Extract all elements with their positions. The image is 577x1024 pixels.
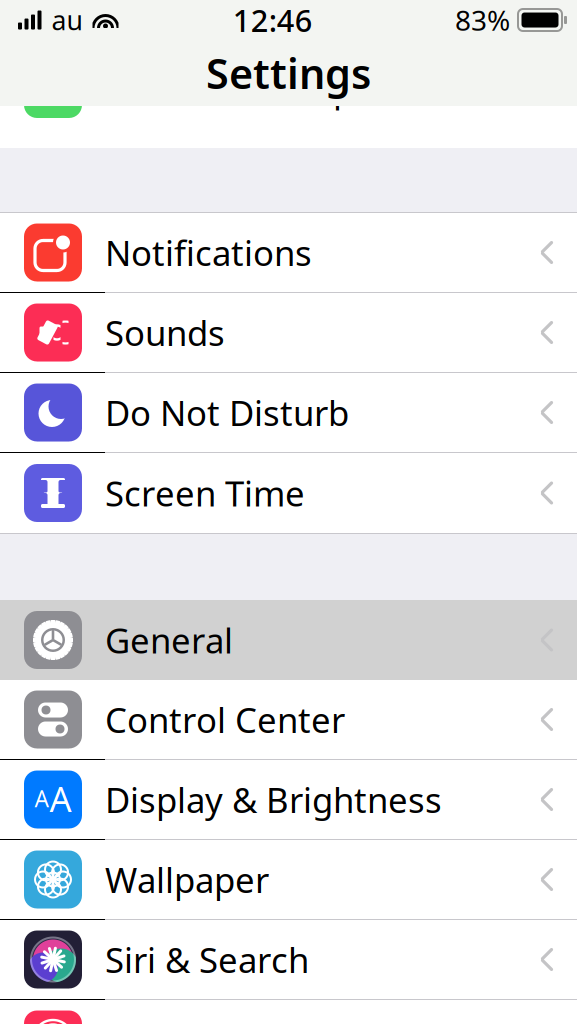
- staticText: General: [105, 617, 233, 663]
- staticText: On: [477, 66, 525, 112]
- button[interactable]: Notifications: [0, 213, 577, 293]
- button[interactable]: Screen Time: [0, 453, 577, 533]
- staticText: Personal Hotspot: [105, 66, 388, 112]
- staticText: Display & Brightness: [105, 776, 442, 822]
- staticText: 83%: [455, 1, 510, 39]
- staticText: A: [49, 775, 71, 821]
- staticText: Notifications: [105, 229, 312, 275]
- staticText: Siri & Search: [105, 936, 309, 982]
- staticText: A: [34, 783, 48, 813]
- button[interactable]: Do Not Disturb: [0, 373, 577, 453]
- staticText: Screen Time: [105, 470, 305, 516]
- staticText: 12:46: [233, 0, 313, 40]
- button[interactable]: General: [0, 600, 577, 680]
- staticText: au: [51, 2, 82, 38]
- staticText: Wallpaper: [105, 856, 269, 902]
- staticText: Sounds: [105, 309, 225, 355]
- staticText: Settings: [206, 46, 371, 100]
- staticText: Do Not Disturb: [105, 389, 349, 435]
- button[interactable]: Siri & Search: [0, 920, 577, 1000]
- button[interactable]: A: [0, 760, 577, 840]
- button[interactable]: Touch ID & Passcode: [0, 1000, 577, 1024]
- staticText: Control Center: [105, 696, 345, 742]
- button[interactable]: Control Center: [0, 680, 577, 760]
- button[interactable]: Wallpaper: [0, 840, 577, 920]
- button[interactable]: Sounds: [0, 293, 577, 373]
